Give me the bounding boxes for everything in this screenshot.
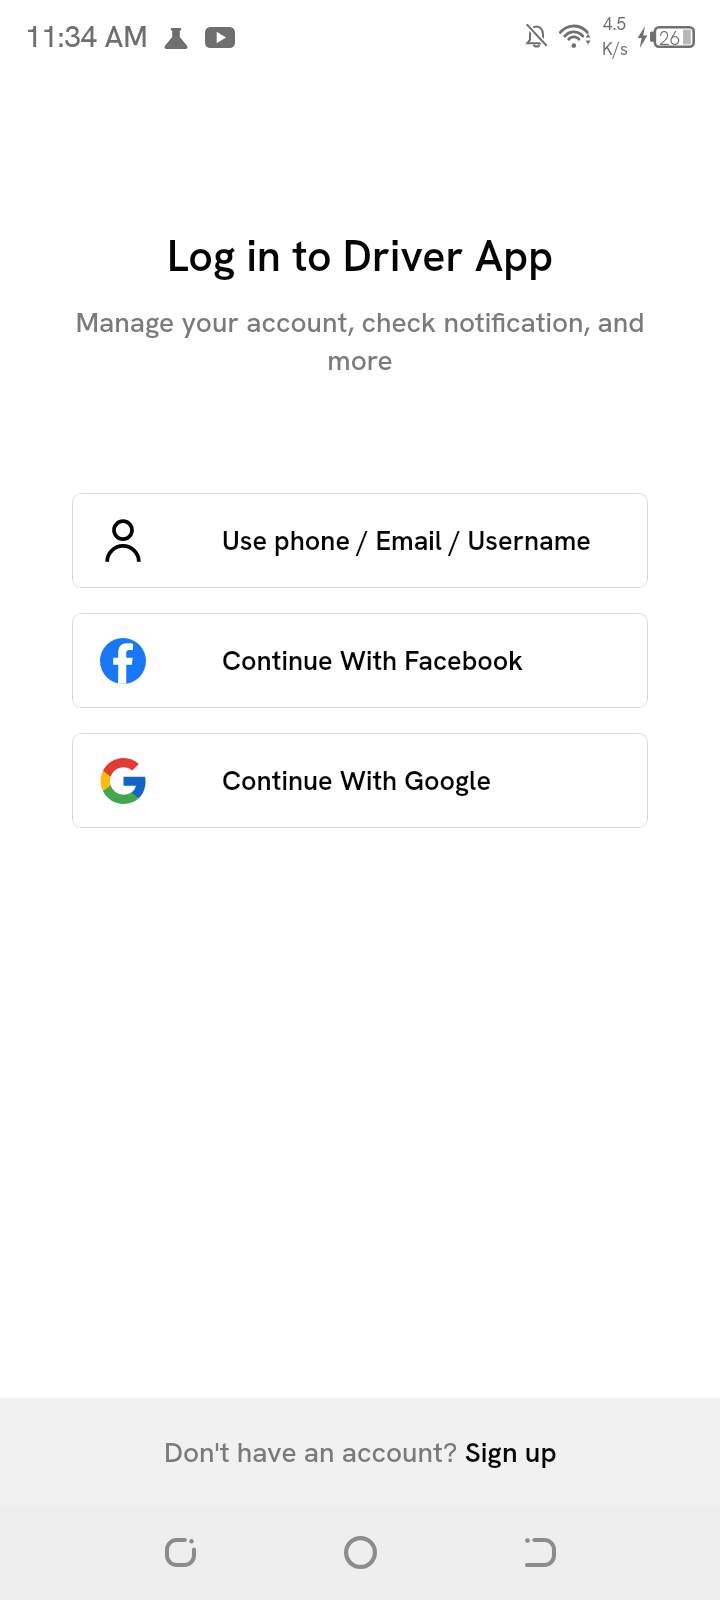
button[interactable]: Use phone / Email / Username xyxy=(72,493,648,588)
button[interactable]: Continue With Google xyxy=(72,733,648,828)
staticText: 26 xyxy=(659,26,681,47)
button[interactable]: Continue With Facebook xyxy=(72,613,648,708)
staticText: Manage your account, check notification,… xyxy=(68,304,652,379)
staticText: 11:34 AM xyxy=(25,18,148,56)
staticText: Log in to Driver App xyxy=(0,228,720,284)
staticText: 4.5 xyxy=(603,13,627,35)
staticText: K/s xyxy=(602,38,628,60)
staticText: Continue With Facebook xyxy=(222,643,524,678)
staticText: Use phone / Email / Username xyxy=(222,523,591,558)
button[interactable]: Recent apps xyxy=(120,1505,240,1600)
staticText: Continue With Google xyxy=(222,763,492,798)
button[interactable]: Back xyxy=(480,1505,600,1600)
button[interactable]: Home xyxy=(240,1505,480,1600)
button[interactable]: Don't have an account? Sign up xyxy=(164,1434,557,1470)
